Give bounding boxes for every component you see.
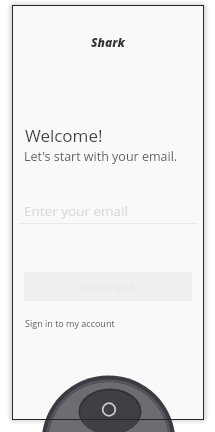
staticText: Let's start with your email. <box>24 148 178 165</box>
staticText: Enter your email <box>24 202 128 220</box>
button[interactable]: Enter your email <box>24 202 192 220</box>
staticText: Welcome! <box>25 124 103 147</box>
button[interactable]: Sign in to my account <box>25 317 115 329</box>
staticText: Shark <box>91 34 125 50</box>
staticText: Sign in to my account <box>25 317 115 329</box>
